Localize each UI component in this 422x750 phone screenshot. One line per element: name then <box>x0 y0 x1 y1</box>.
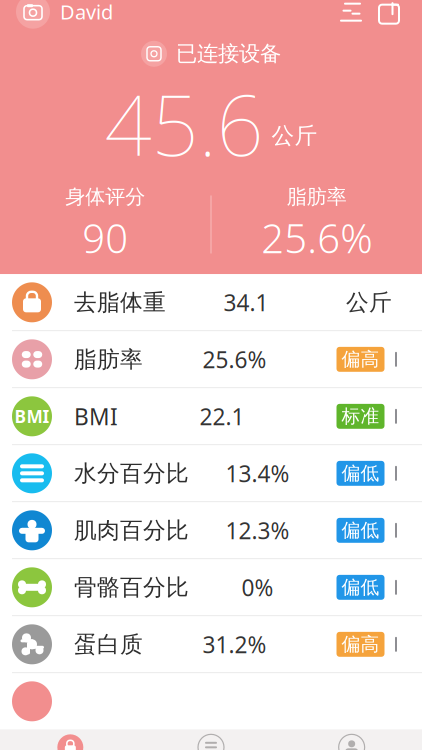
staticText: 水分百分比 <box>74 459 189 487</box>
staticText: 去脂体重 <box>74 288 166 316</box>
staticText: BMI <box>14 405 49 428</box>
button[interactable]: 脂肪率 <box>0 331 422 388</box>
staticText: 22.1 <box>199 401 244 431</box>
button[interactable]: 称重 <box>0 729 141 750</box>
button[interactable]: Share <box>370 0 408 25</box>
staticText: BMI <box>74 401 118 431</box>
button[interactable]: 水分百分比 <box>0 445 422 502</box>
staticText: 0% <box>241 572 273 602</box>
staticText: 肌肉百分比 <box>74 516 189 544</box>
button[interactable]: 个人中心 <box>281 729 422 750</box>
staticText: 偏高 <box>341 633 379 656</box>
staticText: David <box>60 0 113 25</box>
button[interactable]: David <box>0 0 113 33</box>
staticText: 偏低 <box>341 519 379 542</box>
button[interactable]: Trends <box>332 0 370 25</box>
button[interactable]: 历史 <box>141 729 281 750</box>
staticText: 90 <box>82 211 128 264</box>
staticText: 脂肪率 <box>74 345 143 373</box>
staticText: 偏高 <box>341 348 379 371</box>
staticText: 25.6% <box>261 211 372 264</box>
staticText: 31.2% <box>202 629 266 659</box>
staticText: 45.6 <box>104 69 263 179</box>
staticText: 蛋白质 <box>74 630 143 658</box>
staticText: 12.3% <box>225 515 289 545</box>
staticText: 标准 <box>341 405 379 428</box>
staticText: 偏低 <box>341 462 379 485</box>
button[interactable]: 肌肉百分比 <box>0 502 422 559</box>
staticText: 偏低 <box>341 576 379 599</box>
staticText: 公斤 <box>271 122 317 150</box>
button[interactable]: BMI <box>0 388 422 445</box>
staticText: 13.4% <box>225 458 289 488</box>
staticText: 身体评分 <box>65 185 145 209</box>
button[interactable]: 骨骼百分比 <box>0 559 422 616</box>
staticText: 25.6% <box>202 344 266 374</box>
button[interactable]: 去脂体重 <box>0 274 422 331</box>
staticText: 公斤 <box>346 288 392 316</box>
staticText: 骨骼百分比 <box>74 573 189 601</box>
staticText: 脂肪率 <box>287 185 347 209</box>
button[interactable]: 蛋白质 <box>0 616 422 673</box>
staticText: 已连接设备 <box>176 41 281 67</box>
staticText: 34.1 <box>223 287 268 317</box>
